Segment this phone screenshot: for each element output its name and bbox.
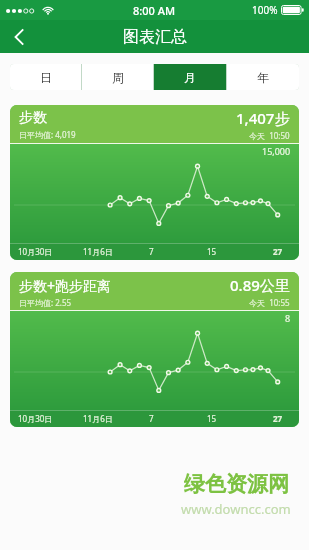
staticText: 27 xyxy=(273,413,283,424)
staticText: 7 xyxy=(149,413,154,424)
staticText: 10月30日 xyxy=(18,413,53,424)
staticText: 图表汇总 xyxy=(123,27,187,47)
staticText: 8 xyxy=(285,312,291,324)
staticText: 15 xyxy=(207,246,217,257)
staticText: 绿色资源网 xyxy=(184,471,289,497)
staticText: 8:00 AM xyxy=(133,3,176,18)
staticText: 10月30日 xyxy=(18,246,53,257)
button[interactable]: Back xyxy=(0,20,38,53)
staticText: 日平均值: 4,019 xyxy=(19,129,76,140)
button[interactable]: 日 xyxy=(10,64,81,90)
button[interactable]: 年 xyxy=(227,64,299,90)
staticText: 11月6日 xyxy=(83,413,113,424)
staticText: 周 xyxy=(112,70,124,85)
staticText: 步数 xyxy=(19,109,47,127)
staticText: 日平均值: 2.55 xyxy=(19,297,72,308)
staticText: 100% xyxy=(252,3,278,17)
button[interactable]: 步数+跑步距离 xyxy=(10,272,299,427)
staticText: 月 xyxy=(184,70,196,85)
staticText: 7 xyxy=(149,246,154,257)
staticText: 步数+跑步距离 xyxy=(19,276,112,295)
staticText: www.downcc.com xyxy=(181,500,291,518)
button[interactable]: 月 xyxy=(154,64,226,90)
staticText: 27 xyxy=(273,246,283,257)
staticText: 0.89公里 xyxy=(230,275,290,295)
staticText: 日 xyxy=(40,70,52,85)
staticText: 年 xyxy=(257,70,269,85)
button[interactable]: 步数 xyxy=(10,105,299,260)
staticText: 今天 10:50 xyxy=(249,130,290,141)
button[interactable]: 周 xyxy=(82,64,153,90)
staticText: 1,407步 xyxy=(236,108,290,128)
staticText: 15,000 xyxy=(262,145,291,157)
staticText: 11月6日 xyxy=(83,246,113,257)
staticText: 15 xyxy=(207,413,217,424)
staticText: 今天 10:55 xyxy=(249,297,290,308)
